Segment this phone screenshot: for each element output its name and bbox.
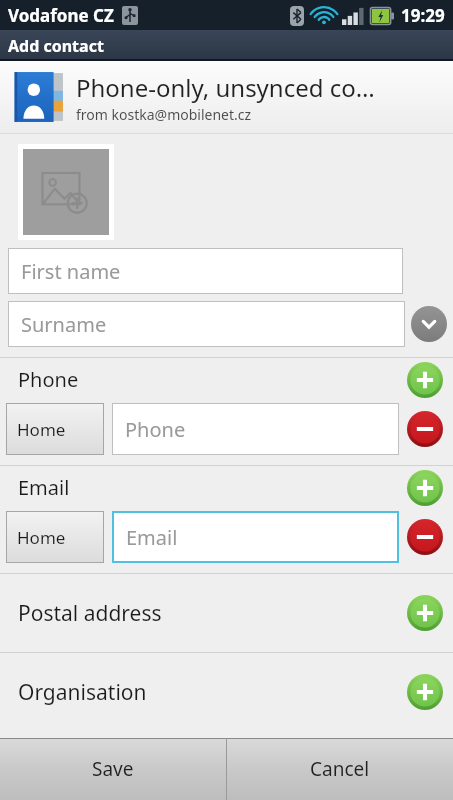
button[interactable]: First name [9,249,402,293]
staticText: Cancel [310,756,370,782]
button[interactable]: Email [114,513,397,561]
button[interactable]: Add field [407,595,443,631]
button[interactable]: Organisation [0,653,453,731]
button[interactable]: Expand name fields [411,306,447,342]
staticText: Organisation [18,678,407,707]
button[interactable]: Postal address [0,574,453,652]
button[interactable]: Remove field [407,411,443,447]
button[interactable]: Surname [9,302,404,346]
staticText: Phone [125,416,186,443]
staticText: Email [126,524,178,551]
staticText: First name [21,258,121,285]
staticText: Save [92,756,134,782]
staticText: Vodafone CZ [8,4,114,27]
button[interactable]: Add field [407,470,443,506]
staticText: Surname [21,311,107,338]
staticText: Postal address [18,599,407,628]
button[interactable]: Add photo [23,149,109,235]
staticText: Phone [18,366,407,393]
button[interactable]: Cancel [227,738,453,800]
button[interactable]: Save [0,738,226,800]
staticText: Home [17,418,66,441]
button[interactable]: Add field [407,674,443,710]
button[interactable]: Phone-only, unsynced co… [0,61,453,133]
staticText: 19:29 [401,4,445,27]
button[interactable]: Add field [407,362,443,398]
button[interactable]: Home [7,404,103,454]
staticText: Email [18,474,407,501]
staticText: from kostka@mobilenet.cz [76,105,252,124]
button[interactable]: Remove field [407,519,443,555]
staticText: Add contact [8,35,104,57]
button[interactable]: Home [7,512,103,562]
button[interactable]: Phone [113,404,398,454]
staticText: Home [17,526,66,549]
staticText: Phone-only, unsynced co… [76,71,375,104]
